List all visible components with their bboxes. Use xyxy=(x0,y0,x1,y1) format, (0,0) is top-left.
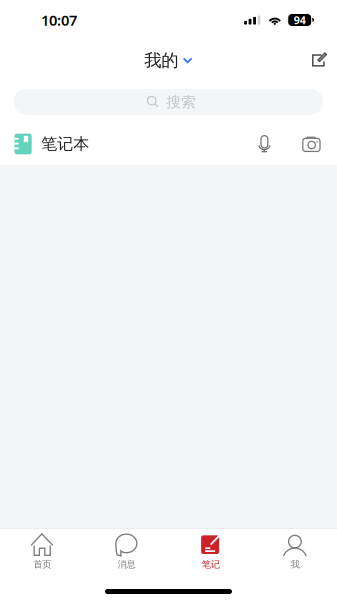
button[interactable]: 我的 xyxy=(144,50,193,71)
staticText: 我 xyxy=(290,559,299,570)
button[interactable]: 笔记本 xyxy=(0,134,89,154)
button[interactable]: 搜索 xyxy=(13,89,323,115)
staticText: 首页 xyxy=(33,559,51,570)
button[interactable]: Voice input xyxy=(258,136,271,152)
staticText: 我的 xyxy=(144,50,178,71)
staticText: 10:07 xyxy=(41,10,77,30)
button[interactable]: 消息 xyxy=(84,529,168,575)
button[interactable]: 首页 xyxy=(0,529,84,575)
staticText: 搜索 xyxy=(166,93,196,111)
button[interactable]: Compose xyxy=(312,52,337,69)
staticText: 94 xyxy=(294,13,306,27)
staticText: 消息 xyxy=(117,559,135,570)
button[interactable]: Camera xyxy=(303,136,320,151)
button[interactable]: 我 xyxy=(253,529,337,575)
button[interactable]: 笔记 xyxy=(168,529,253,575)
staticText: 笔记 xyxy=(202,559,220,570)
staticText: 笔记本 xyxy=(41,134,89,154)
